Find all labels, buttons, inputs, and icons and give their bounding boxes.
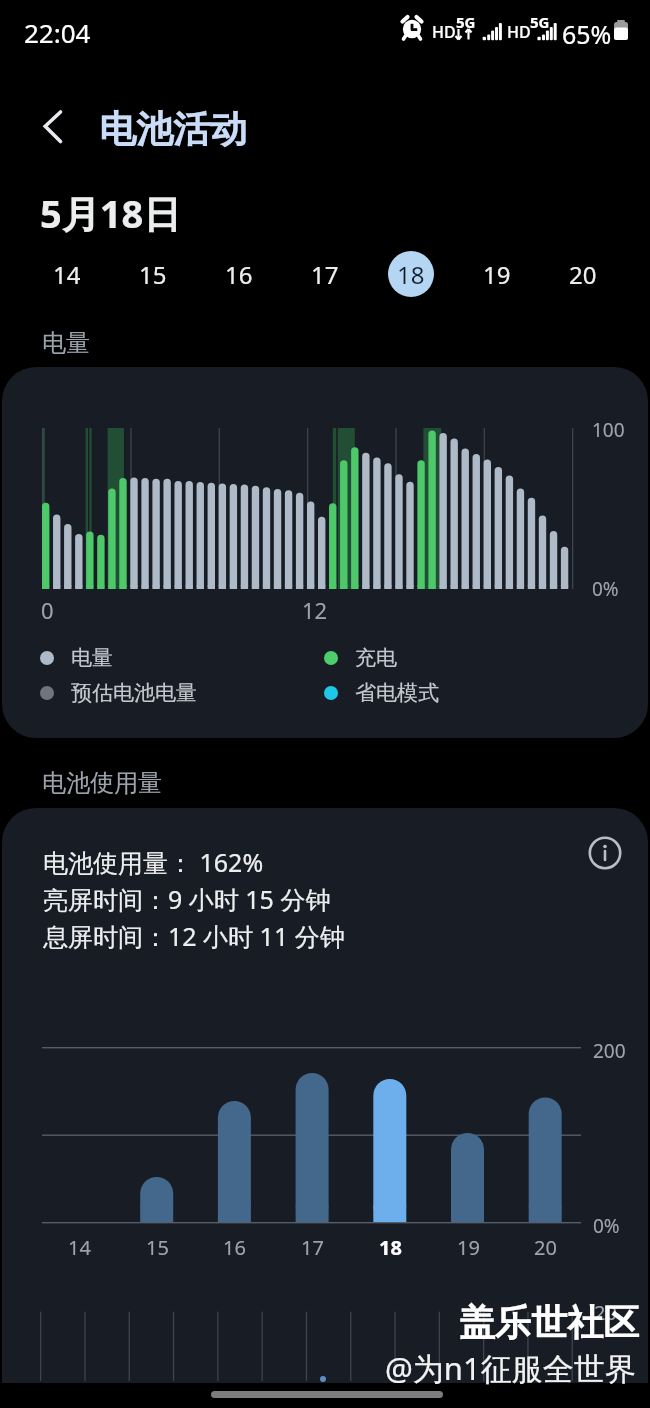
button[interactable]: 预估电池电量 — [40, 680, 197, 706]
staticText: 17 — [301, 1234, 324, 1261]
button[interactable]: 14 — [44, 251, 90, 297]
button[interactable]: 电量 — [40, 645, 113, 671]
staticText: 预估电池电量 — [71, 680, 197, 706]
staticText: HD — [432, 21, 456, 43]
staticText: 20 — [594, 1299, 617, 1326]
button[interactable]: 充电 — [324, 645, 397, 671]
button[interactable]: 17 — [302, 251, 348, 297]
button[interactable]: 16 — [216, 251, 262, 297]
staticText: 5G — [530, 12, 550, 32]
button[interactable]: Info — [587, 835, 623, 871]
button[interactable]: 18 — [388, 251, 434, 297]
staticText: 20 — [534, 1234, 557, 1261]
staticText: 14 — [53, 258, 81, 291]
button[interactable]: 省电模式 — [324, 680, 439, 706]
staticText: 18 — [397, 258, 425, 291]
staticText: 盖乐世社区 — [459, 1300, 639, 1345]
staticText: 17 — [311, 258, 339, 291]
staticText: 16 — [223, 1234, 246, 1261]
button[interactable]: 19 — [474, 251, 520, 297]
button[interactable]: 20 — [560, 251, 606, 297]
staticText: 12 — [302, 595, 328, 625]
staticText: 0 — [41, 595, 54, 625]
staticText: 省电模式 — [355, 680, 439, 706]
staticText: 5G — [456, 12, 476, 32]
staticText: 亮屏时间：9 小时 15 分钟 — [43, 882, 331, 916]
staticText: 22:04 — [24, 15, 91, 50]
button[interactable]: 电池活动 — [99, 106, 247, 153]
staticText: 16 — [225, 258, 253, 291]
staticText: 0% — [593, 1213, 620, 1239]
staticText: 19 — [457, 1234, 480, 1261]
staticText: 电量 — [42, 328, 90, 358]
staticText: 电池使用量 — [42, 768, 162, 798]
staticText: 18 — [379, 1234, 402, 1261]
staticText: 电池使用量： 162% — [43, 845, 264, 879]
staticText: 200 — [593, 1038, 626, 1064]
button[interactable]: Back — [22, 98, 82, 158]
staticText: 0% — [592, 576, 619, 602]
staticText: 15 — [139, 258, 167, 291]
staticText: 20 — [569, 258, 597, 291]
staticText: 息屏时间：12 小时 11 分钟 — [43, 919, 345, 953]
staticText: 充电 — [355, 645, 397, 671]
staticText: 15 — [146, 1234, 169, 1261]
staticText: @为n1征服全世界 — [385, 1347, 636, 1389]
staticText: 5月18日 — [40, 187, 182, 239]
staticText: 100 — [592, 417, 625, 443]
staticText: 14 — [68, 1234, 91, 1261]
staticText: 电量 — [71, 645, 113, 671]
staticText: 65% — [562, 17, 612, 51]
button[interactable]: 15 — [130, 251, 176, 297]
staticText: 19 — [483, 258, 511, 291]
staticText: HD — [507, 21, 531, 43]
